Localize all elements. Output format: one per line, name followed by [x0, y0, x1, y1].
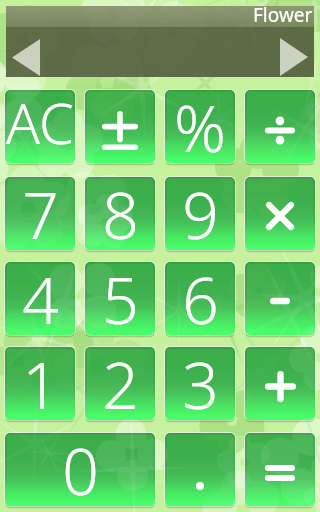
- button[interactable]: Plus minus: [85, 90, 155, 163]
- staticText: Flower: [253, 2, 313, 28]
- button[interactable]: Subtract: [245, 262, 315, 335]
- staticText: 1: [22, 347, 59, 414]
- staticText: 5: [102, 262, 139, 329]
- button[interactable]: 7: [5, 177, 75, 250]
- button[interactable]: Multiply: [245, 177, 315, 250]
- button[interactable]: Equals: [245, 433, 315, 506]
- staticText: 9: [182, 177, 219, 244]
- button[interactable]: Previous theme: [12, 39, 40, 76]
- button[interactable]: Divide: [245, 90, 315, 163]
- button[interactable]: Decimal point: [165, 433, 235, 506]
- staticText: 7: [22, 177, 59, 244]
- button[interactable]: 0: [5, 433, 155, 506]
- button[interactable]: 8: [85, 177, 155, 250]
- button[interactable]: 6: [165, 262, 235, 335]
- staticText: 6: [182, 262, 219, 329]
- staticText: 0: [62, 433, 99, 500]
- staticText: 3: [182, 347, 219, 414]
- button[interactable]: 3: [165, 347, 235, 420]
- staticText: 4: [22, 262, 59, 329]
- button[interactable]: 4: [5, 262, 75, 335]
- staticText: AC: [6, 90, 74, 157]
- button[interactable]: 9: [165, 177, 235, 250]
- button[interactable]: 5: [85, 262, 155, 335]
- button[interactable]: Add: [245, 347, 315, 420]
- staticText: %: [174, 90, 226, 157]
- button[interactable]: Next theme: [280, 38, 308, 76]
- button[interactable]: 2: [85, 347, 155, 420]
- button[interactable]: %: [165, 90, 235, 163]
- staticText: 2: [102, 347, 139, 414]
- button[interactable]: AC: [5, 90, 75, 163]
- staticText: 8: [102, 177, 139, 244]
- button[interactable]: 1: [5, 347, 75, 420]
